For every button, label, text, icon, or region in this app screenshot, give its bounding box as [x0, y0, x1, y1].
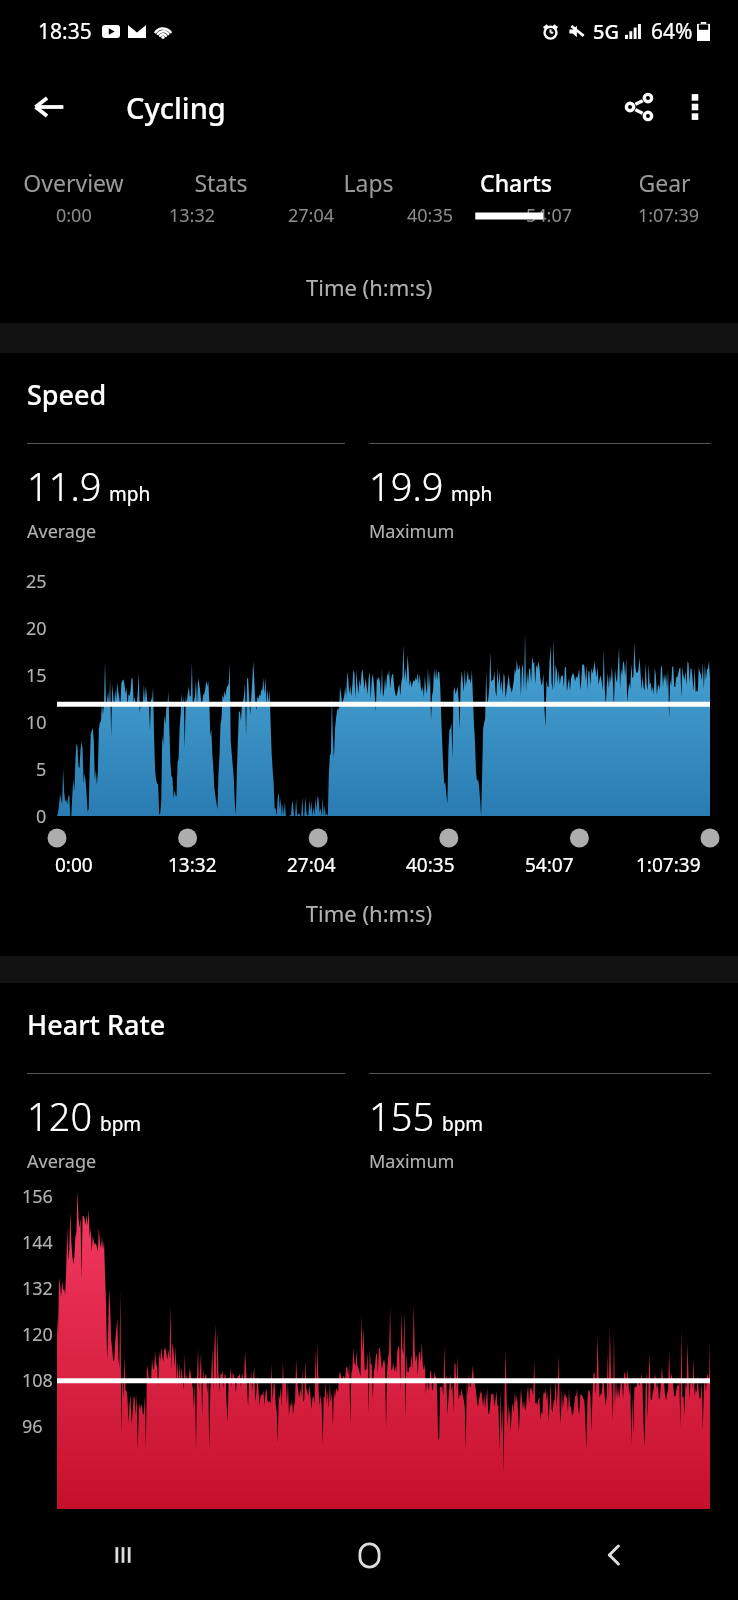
button[interactable]: Gear: [590, 152, 738, 212]
staticText: 132: [22, 1276, 53, 1301]
staticText: Average: [27, 519, 97, 544]
staticText: 19.9: [369, 460, 444, 512]
staticText: Stats: [194, 167, 248, 198]
staticText: Speed: [27, 376, 107, 413]
button[interactable]: 120: [27, 1073, 345, 1174]
button[interactable]: Recents: [0, 1510, 246, 1600]
staticText: 96: [22, 1414, 43, 1439]
button[interactable]: Home: [246, 1510, 492, 1600]
staticText: 1:07:39: [638, 203, 700, 228]
staticText: Gear: [638, 167, 691, 198]
staticText: 40:35: [407, 203, 454, 228]
staticText: 18:35: [38, 17, 92, 46]
staticText: 13:32: [169, 203, 216, 228]
staticText: 108: [22, 1368, 53, 1393]
staticText: Overview: [23, 167, 124, 198]
staticText: 155: [369, 1090, 435, 1142]
staticText: Maximum: [369, 519, 455, 544]
staticText: 54:07: [525, 852, 574, 878]
staticText: mph: [451, 481, 493, 507]
staticText: 0: [36, 804, 47, 829]
staticText: 11.9: [27, 460, 102, 512]
staticText: Average: [27, 1149, 97, 1174]
staticText: 0:00: [55, 852, 93, 878]
staticText: 54:07: [526, 203, 573, 228]
staticText: 13:32: [168, 852, 217, 878]
staticText: 144: [22, 1230, 53, 1255]
button[interactable]: Share: [610, 78, 668, 136]
staticText: Laps: [343, 167, 394, 198]
staticText: 156: [22, 1184, 53, 1209]
staticText: 1:07:39: [636, 852, 701, 878]
staticText: 5G: [593, 18, 619, 45]
button[interactable]: 11.9: [27, 443, 345, 544]
button[interactable]: More options: [668, 80, 722, 134]
staticText: mph: [109, 481, 151, 507]
staticText: 10: [26, 710, 47, 735]
staticText: 27:04: [288, 203, 335, 228]
staticText: 25: [26, 569, 47, 594]
staticText: bpm: [442, 1111, 484, 1137]
button[interactable]: Charts: [442, 152, 590, 212]
button[interactable]: Back: [492, 1510, 738, 1600]
staticText: Time (h:m:s): [0, 898, 738, 928]
staticText: 40:35: [406, 852, 455, 878]
staticText: Charts: [480, 167, 552, 198]
staticText: Maximum: [369, 1149, 455, 1174]
staticText: 120: [27, 1090, 93, 1142]
staticText: Cycling: [126, 88, 226, 127]
staticText: 27:04: [287, 852, 336, 878]
staticText: 20: [26, 616, 47, 641]
staticText: 5: [36, 757, 47, 782]
button[interactable]: Overview: [0, 152, 147, 212]
button[interactable]: Laps: [294, 152, 442, 212]
button[interactable]: 155: [369, 1073, 711, 1174]
staticText: 64%: [651, 17, 693, 46]
staticText: 120: [22, 1322, 53, 1347]
staticText: 0:00: [56, 203, 92, 228]
staticText: 15: [26, 663, 47, 688]
staticText: Time (h:m:s): [306, 272, 433, 302]
button[interactable]: 19.9: [369, 443, 711, 544]
button[interactable]: Stats: [147, 152, 294, 212]
staticText: Heart Rate: [27, 1006, 166, 1043]
button[interactable]: Back: [20, 78, 78, 136]
staticText: bpm: [100, 1111, 142, 1137]
